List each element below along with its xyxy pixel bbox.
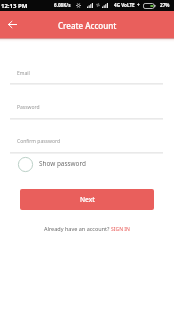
staticText: 6.08K/s <box>54 2 71 8</box>
staticText: Password <box>17 104 40 111</box>
staticText: Create Account <box>58 20 117 31</box>
staticText: Already have an account? <box>44 225 111 232</box>
staticText: Show password <box>39 159 86 168</box>
button[interactable]: Show password <box>18 156 86 172</box>
staticText: 27% <box>160 2 170 8</box>
staticText: 12:13 PM <box>1 2 28 10</box>
button[interactable]: Navigate back <box>2 14 23 35</box>
staticText: Email <box>17 70 30 77</box>
button[interactable]: Next <box>20 189 154 210</box>
button[interactable]: SIGN IN <box>111 226 130 233</box>
staticText: Confirm password <box>17 138 60 145</box>
staticText: 4G VoLTE <box>114 2 135 8</box>
staticText: + <box>137 2 140 8</box>
staticText: Next <box>80 195 95 204</box>
